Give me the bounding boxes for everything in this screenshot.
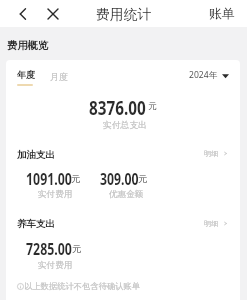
button[interactable]: Close [42, 3, 64, 25]
staticText: 优惠金额 [109, 189, 144, 200]
staticText: 以上数据统计不包含待确认账单 [24, 281, 141, 291]
button[interactable]: 明细 [204, 219, 227, 228]
button[interactable]: 年度 [17, 69, 36, 86]
button[interactable]: 账单 [205, 0, 239, 27]
button[interactable]: 明细 [204, 149, 227, 158]
staticText: 元 [72, 243, 82, 255]
staticText: 明细 [204, 149, 218, 158]
staticText: 实付费用 [38, 189, 73, 200]
staticText: 实付费用 [38, 260, 73, 271]
button[interactable]: Back [11, 3, 33, 25]
staticText: 元 [148, 101, 157, 112]
staticText: 费用统计 [96, 6, 152, 23]
staticText: 费用概览 [7, 39, 49, 52]
staticText: 309.00 [100, 169, 139, 190]
staticText: 账单 [209, 6, 235, 22]
staticText: 月度 [50, 71, 68, 82]
button[interactable]: 月度 [50, 71, 68, 82]
staticText: 实付总支出 [103, 120, 147, 131]
staticText: 8376.00 [89, 95, 146, 121]
staticText: 加油支出 [17, 149, 55, 161]
button[interactable]: 以上数据统计不包含待确认账单 [17, 281, 141, 291]
staticText: 年度 [17, 69, 36, 80]
staticText: 元 [71, 173, 81, 185]
button[interactable]: 2024年 [189, 69, 229, 81]
staticText: 7285.00 [26, 239, 72, 260]
staticText: 2024年 [189, 69, 218, 81]
staticText: 养车支出 [17, 218, 55, 230]
staticText: 明细 [204, 219, 218, 228]
staticText: 1091.00 [26, 169, 72, 190]
staticText: 元 [138, 173, 148, 185]
